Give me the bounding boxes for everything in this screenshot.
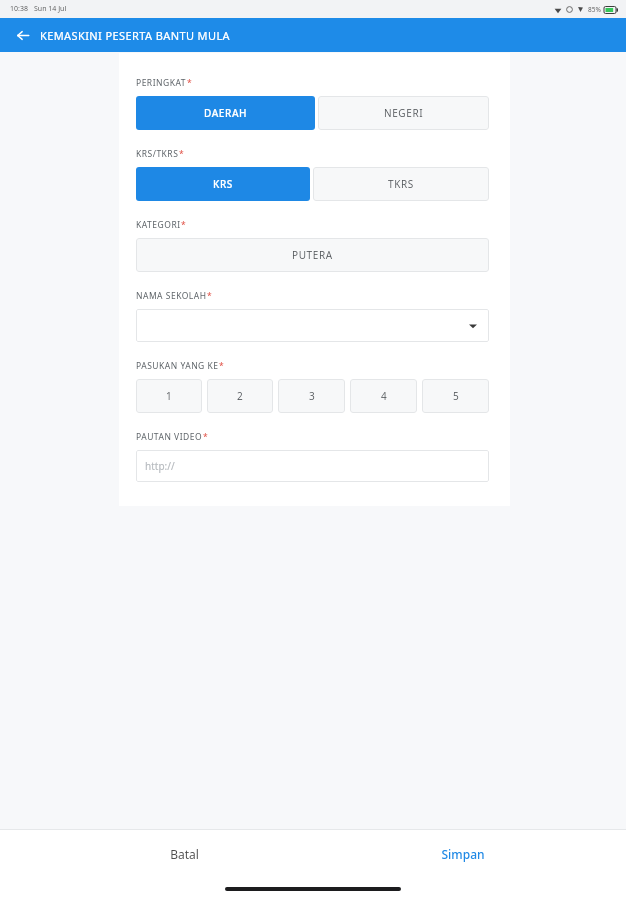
staticText: TKRS [388,177,414,191]
button[interactable]: http:// [136,450,489,482]
staticText: NAMA SEKOLAH [136,290,207,302]
button[interactable]: NEGERI [318,96,489,130]
staticText: * [219,360,224,372]
button[interactable]: 3 [278,379,345,413]
staticText: * [181,219,186,231]
button[interactable]: KRS [136,167,310,201]
button[interactable]: DAERAH [136,96,315,130]
staticText: http:// [145,459,175,473]
staticText: * [179,148,184,160]
staticText: PASUKAN YANG KE [136,360,219,372]
staticText: KATEGORI [136,219,181,231]
button[interactable]: Back [8,21,36,49]
staticText: PERINGKAT [136,77,187,89]
staticText: NEGERI [384,106,424,120]
staticText: 85% [588,5,601,14]
button[interactable]: Batal [0,830,313,878]
staticText: * [207,290,212,302]
staticText: Sun 14 Jul [34,4,67,14]
staticText: 5 [453,389,459,403]
staticText: KRS [213,177,233,191]
staticText: Simpan [441,846,485,862]
staticText: 2 [237,389,243,403]
staticText: PAUTAN VIDEO [136,431,203,443]
button[interactable]: 2 [207,379,273,413]
button[interactable]: 4 [350,379,417,413]
button[interactable]: 5 [422,379,489,413]
button[interactable]: 1 [136,379,202,413]
staticText: KRS/TKRS [136,148,179,160]
staticText: 1 [166,389,172,403]
staticText: KEMASKINI PESERTA BANTU MULA [40,28,231,43]
button[interactable]: TKRS [313,167,489,201]
staticText: DAERAH [204,106,248,120]
button[interactable]: PUTERA [136,238,489,272]
staticText: 4 [381,389,387,403]
staticText: PUTERA [292,248,333,262]
button[interactable]: Simpan [313,830,626,878]
staticText: Batal [170,846,199,862]
staticText: * [203,431,208,443]
staticText: * [187,77,192,89]
staticText: 3 [309,389,315,403]
button[interactable]: Select school [136,309,489,342]
staticText: 10:38 [10,4,28,14]
